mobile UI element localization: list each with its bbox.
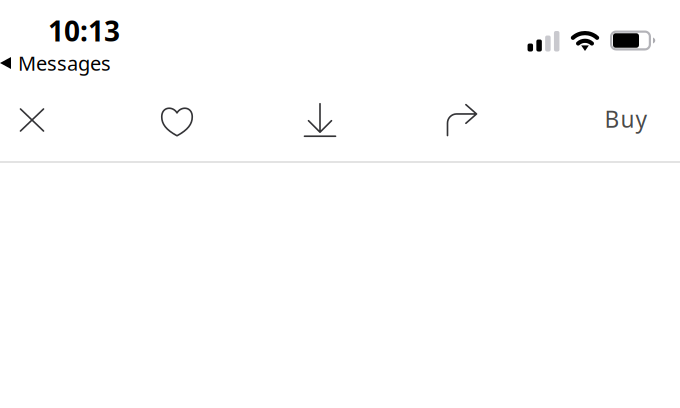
- button[interactable]: Messages: [0, 51, 200, 75]
- button[interactable]: Like: [145, 90, 209, 152]
- button[interactable]: Buy: [586, 88, 666, 150]
- button[interactable]: Download: [288, 89, 352, 151]
- staticText: Messages: [18, 50, 111, 76]
- button[interactable]: Share: [430, 89, 494, 151]
- button[interactable]: Close: [0, 89, 64, 151]
- staticText: 10:13: [48, 12, 120, 49]
- staticText: Buy: [604, 104, 648, 134]
